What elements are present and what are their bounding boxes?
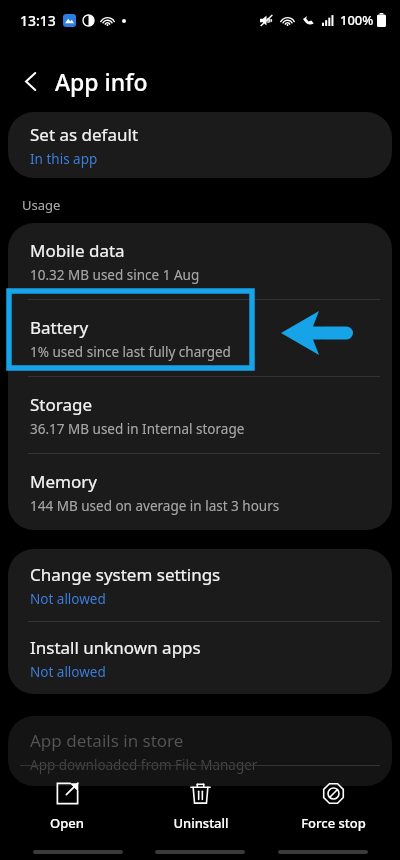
button[interactable]: Set as default [8,112,392,178]
button[interactable]: Storage [8,377,392,453]
staticText: 36.17 MB used in Internal storage [30,420,245,438]
button[interactable]: Change system settings [8,549,392,621]
button[interactable]: Mobile data [8,223,392,299]
staticText: In this app [30,150,98,168]
staticText: Force stop [301,814,366,832]
button[interactable]: Force stop [267,766,400,844]
staticText: 144 MB used on average in last 3 hours [30,497,280,515]
staticText: 10.32 MB used since 1 Aug [30,266,200,284]
button[interactable]: Open [0,766,134,844]
staticText: Memory [30,470,97,493]
staticText: Uninstall [173,814,229,832]
staticText: 1% used since last fully charged [30,343,231,361]
staticText: App downloaded from File Manager [30,756,258,774]
button[interactable]: Uninstall [134,766,267,844]
staticText: Install unknown apps [30,636,201,659]
staticText: App details in store [30,729,184,752]
button[interactable]: Install unknown apps [8,622,392,694]
staticText: App info [55,66,148,97]
button[interactable]: Battery [8,300,392,376]
staticText: Open [50,814,84,832]
staticText: 13:13 [20,11,56,30]
button[interactable]: Memory [8,454,392,530]
staticText: Storage [30,393,93,416]
button[interactable]: Back [10,60,52,102]
staticText: Not allowed [30,663,106,681]
staticText: Set as default [30,123,139,146]
staticText: Usage [22,196,61,214]
staticText: Change system settings [30,563,221,586]
staticText: Not allowed [30,590,106,608]
staticText: Mobile data [30,239,125,262]
staticText: 100% [340,11,374,29]
staticText: Battery [30,316,89,339]
